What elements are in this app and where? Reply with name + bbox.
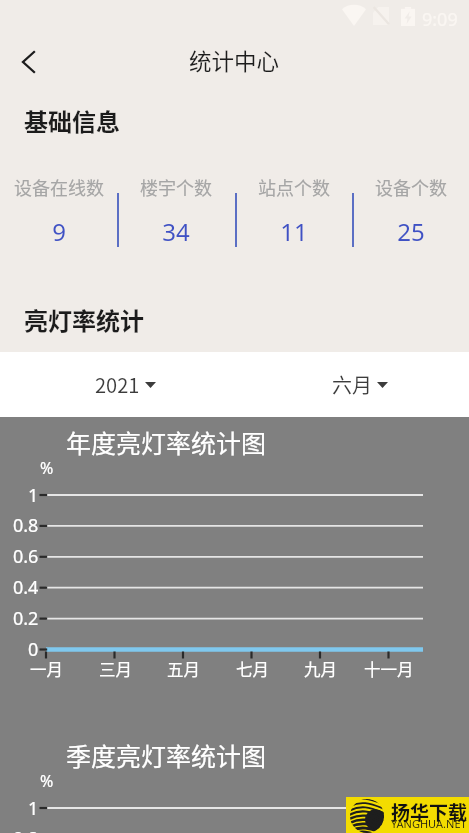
button[interactable]: 站点个数 [235,174,352,248]
button[interactable]: 设备个数 [352,174,469,248]
staticText: 年度亮灯率统计图 [66,424,267,460]
staticText: 0.2 [13,606,39,631]
staticText: 1 [28,483,39,508]
staticText: 0.8 [13,513,39,538]
staticText: 0.8 [13,826,39,833]
staticText: 六月 [332,370,372,399]
staticText: 0 [28,637,39,662]
button[interactable]: 设备在线数 [0,174,117,248]
staticText: 11 [280,215,308,248]
staticText: 七月 [236,657,269,681]
staticText: YANGHUA.NET [391,816,467,831]
staticText: 十一月 [364,657,414,681]
staticText: 基础信息 [24,103,120,138]
staticText: 亮灯率统计 [24,302,144,337]
staticText: 设备个数 [375,174,447,200]
staticText: 九月 [304,657,337,681]
staticText: 季度亮灯率统计图 [66,737,267,773]
staticText: 设备在线数 [14,174,104,200]
staticText: 1 [28,796,39,821]
staticText: 楼宇个数 [140,174,212,200]
staticText: 34 [162,215,190,248]
staticText: 0.4 [13,575,39,600]
staticText: 扬华下载 [391,798,468,826]
button[interactable]: Select month [332,366,388,403]
staticText: 三月 [99,657,132,681]
staticText: % [40,457,54,479]
staticText: 一月 [30,657,63,681]
staticText: 9 [52,215,66,248]
staticText: % [40,770,54,792]
button[interactable]: Back [4,38,52,86]
staticText: 统计中心 [189,44,280,77]
button[interactable]: Select year [95,366,156,403]
staticText: 五月 [167,657,200,681]
staticText: 2021 [95,370,140,399]
button[interactable]: 楼宇个数 [117,174,234,248]
staticText: 9:09 [422,7,458,32]
staticText: 0.6 [13,544,39,569]
staticText: 站点个数 [258,174,330,200]
staticText: 25 [397,215,425,248]
